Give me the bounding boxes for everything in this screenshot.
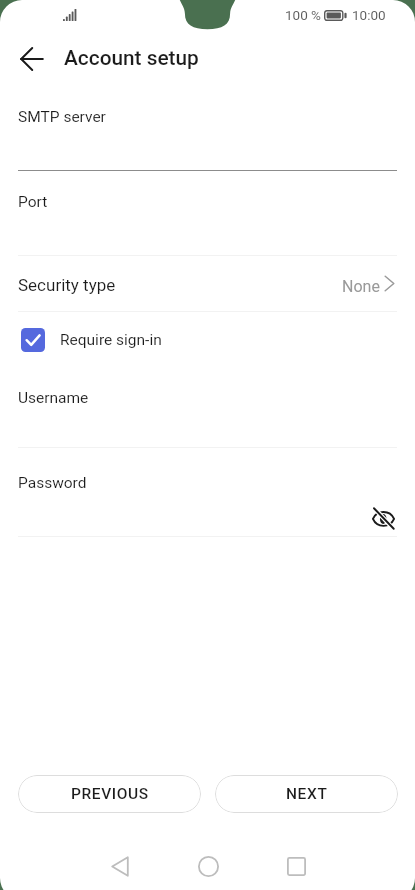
staticText: 10:00 xyxy=(352,7,386,23)
button[interactable]: Show password xyxy=(365,500,402,537)
button[interactable]: Home xyxy=(176,840,240,890)
staticText: PREVIOUS xyxy=(71,785,149,803)
staticText: SMTP server xyxy=(18,108,106,126)
staticText: Port xyxy=(18,193,48,211)
staticText: Username xyxy=(18,389,89,407)
staticText: Require sign-in xyxy=(60,331,162,349)
staticText: NEXT xyxy=(286,785,328,803)
button[interactable]: NEXT xyxy=(215,775,398,813)
staticText: Account setup xyxy=(64,46,199,70)
button[interactable]: Security type xyxy=(0,264,415,312)
button[interactable]: Back xyxy=(88,840,152,890)
staticText: None xyxy=(342,277,380,296)
button[interactable]: PREVIOUS xyxy=(18,775,201,813)
staticText: Password xyxy=(18,474,87,492)
button[interactable]: Recents xyxy=(264,840,328,890)
staticText: 100 % xyxy=(285,7,321,23)
button[interactable]: Back xyxy=(9,36,55,82)
button[interactable]: Require sign-in xyxy=(0,318,415,362)
staticText: Security type xyxy=(18,275,116,295)
